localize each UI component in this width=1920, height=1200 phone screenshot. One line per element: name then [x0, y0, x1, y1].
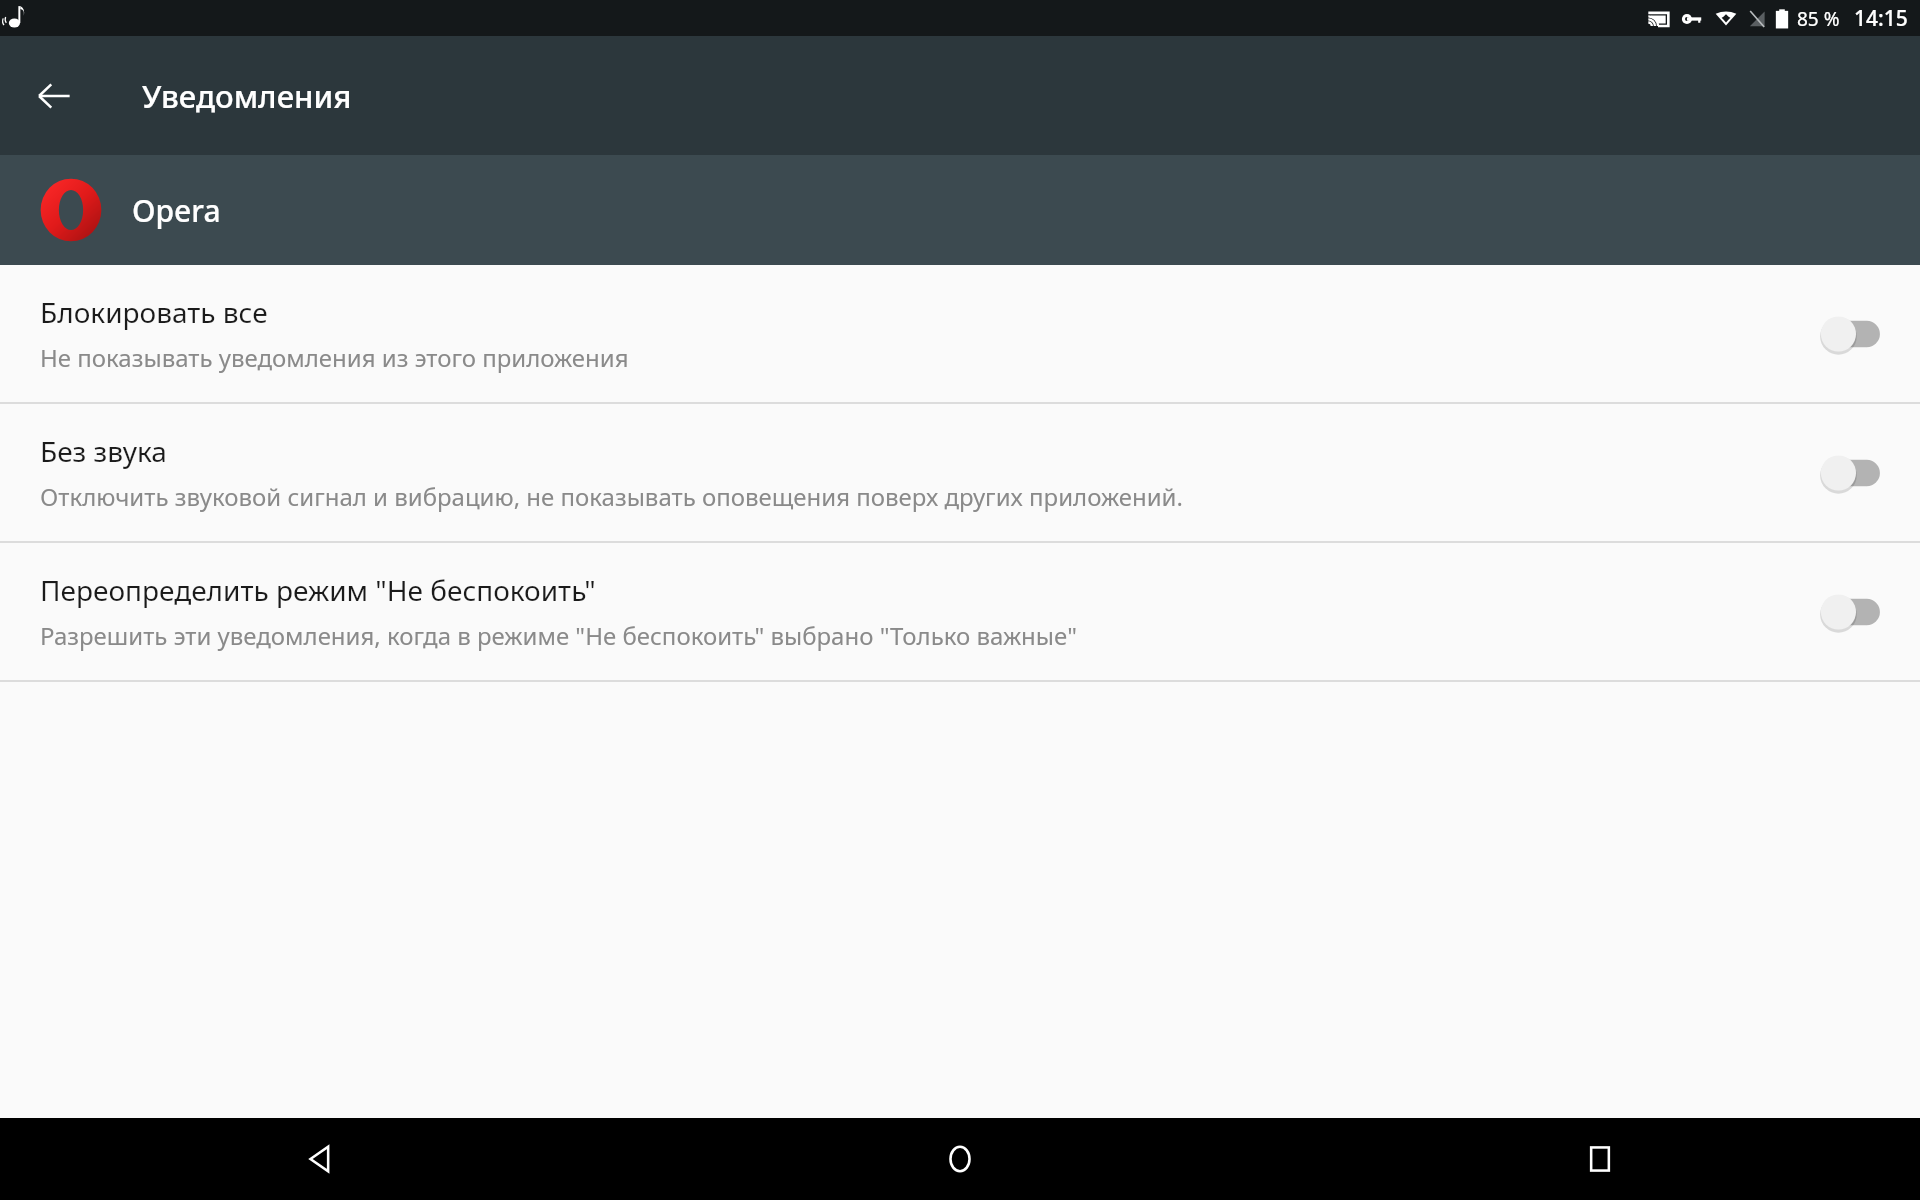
- staticText: Не показывать уведомления из этого прило…: [40, 341, 629, 374]
- staticText: Разрешить эти уведомления, когда в режим…: [40, 619, 1078, 652]
- staticText: Блокировать все: [40, 293, 268, 331]
- button[interactable]: Обзор: [1280, 1118, 1920, 1200]
- button[interactable]: Opera: [0, 155, 1920, 265]
- staticText: Без звука: [40, 432, 167, 470]
- staticText: Отключить звуковой сигнал и вибрацию, не…: [40, 480, 1183, 513]
- button[interactable]: Главный экран: [640, 1118, 1280, 1200]
- staticText: Уведомления: [142, 75, 352, 117]
- button[interactable]: Переопределить режим "Не беспокоить": [0, 543, 1920, 680]
- staticText: Переопределить режим "Не беспокоить": [40, 571, 596, 609]
- staticText: 14:15: [1854, 4, 1908, 33]
- button[interactable]: Назад: [0, 1118, 640, 1200]
- staticText: Opera: [132, 190, 221, 231]
- button[interactable]: Блокировать все: [0, 265, 1920, 402]
- staticText: 85 %: [1797, 6, 1840, 32]
- button[interactable]: Без звука: [0, 404, 1920, 541]
- button[interactable]: Блокировать все: [1780, 265, 1920, 402]
- button[interactable]: Назад: [24, 66, 84, 126]
- button[interactable]: Без звука: [1780, 404, 1920, 541]
- button[interactable]: Переопределить режим "Не беспокоить": [1780, 543, 1920, 680]
